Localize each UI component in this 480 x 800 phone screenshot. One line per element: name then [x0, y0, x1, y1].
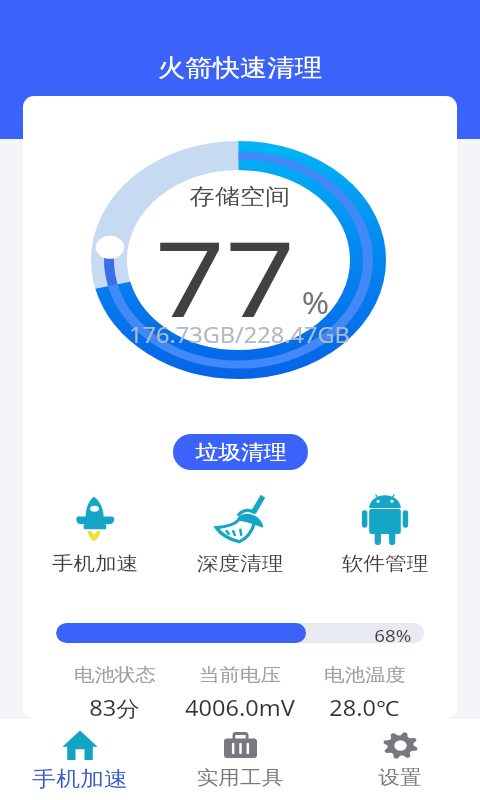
staticText: 77 — [155, 205, 296, 348]
staticText: 火箭快速清理 — [158, 53, 322, 83]
button[interactable]: 手机加速 — [23, 491, 167, 576]
staticText: 手机加速 — [52, 552, 138, 576]
staticText: % — [302, 282, 329, 323]
other: 设置 — [383, 732, 418, 759]
button[interactable]: 手机加速 — [0, 719, 160, 782]
staticText: 4006.0mV — [185, 694, 295, 723]
staticText: 软件管理 — [342, 552, 428, 576]
staticText: 68% — [374, 624, 412, 647]
other: 实用工具 — [224, 733, 257, 758]
other: 手机加速 — [62, 730, 98, 760]
staticText: 实用工具 — [197, 766, 283, 790]
staticText: 手机加速 — [32, 766, 128, 792]
button[interactable]: 实用工具 — [160, 719, 320, 780]
staticText: 176.73GB/228.47GB — [129, 321, 351, 350]
staticText: 存储空间 — [190, 183, 290, 211]
button[interactable]: 设置 — [320, 719, 480, 780]
staticText: 28.0℃ — [329, 694, 400, 723]
button[interactable]: 深度清理 — [167, 491, 312, 576]
staticText: 电池温度 — [324, 664, 406, 687]
staticText: 当前电压 — [199, 664, 281, 687]
button[interactable]: 软件管理 — [312, 491, 457, 576]
staticText: 电池状态 — [74, 664, 156, 687]
button[interactable]: 垃圾清理 — [173, 434, 308, 470]
staticText: 垃圾清理 — [195, 440, 287, 465]
staticText: 设置 — [378, 766, 422, 790]
staticText: 83分 — [89, 694, 141, 723]
staticText: 深度清理 — [197, 552, 283, 576]
